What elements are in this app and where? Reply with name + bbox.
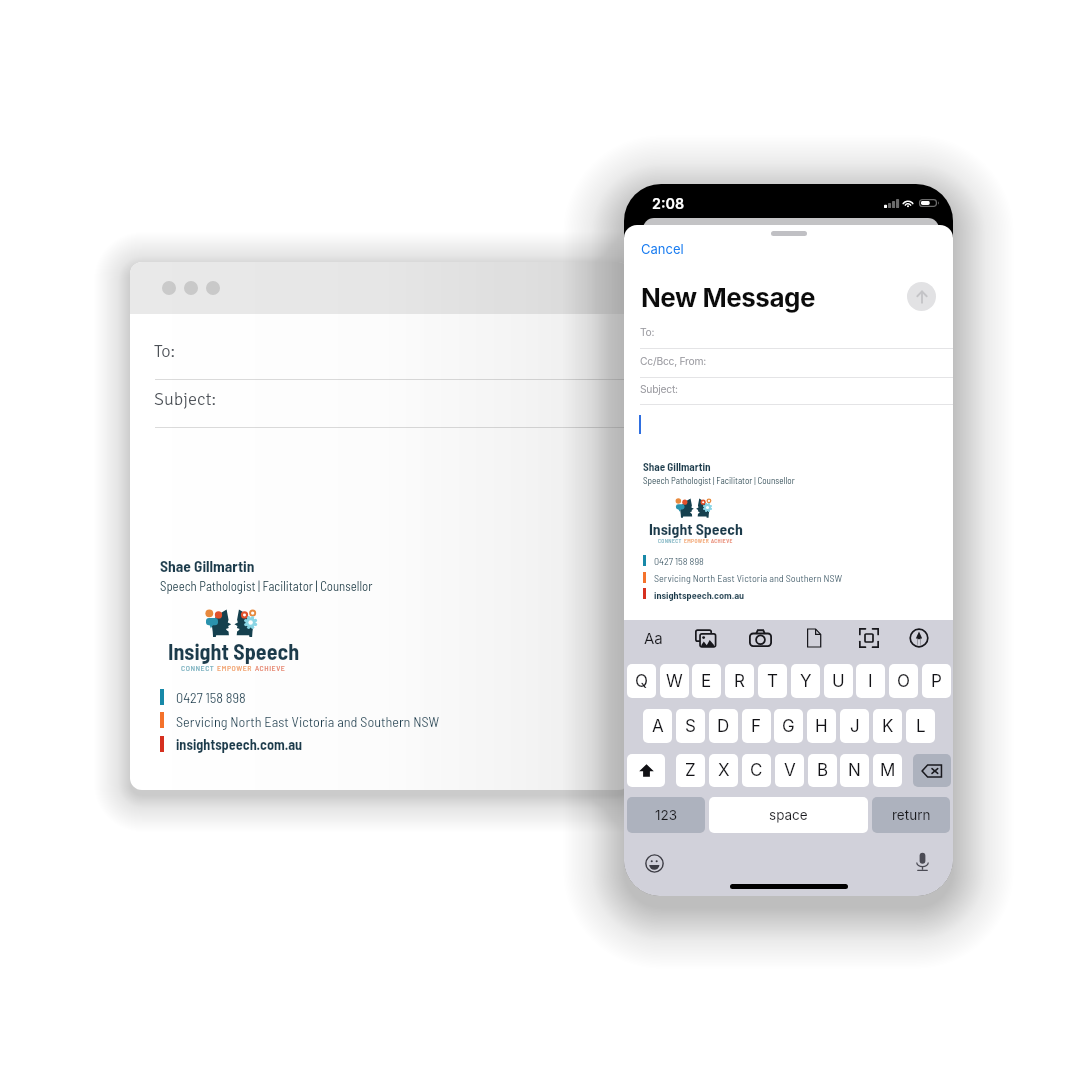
staticText: To: (640, 326, 655, 338)
button[interactable]: W (660, 664, 689, 698)
staticText: CONNECT (658, 537, 684, 544)
staticText: To: (154, 340, 176, 362)
staticText: Insight Speech (168, 638, 300, 664)
button[interactable]: Backspace (913, 754, 951, 787)
staticText: B (817, 760, 829, 781)
staticText: X (718, 760, 730, 781)
staticText: C (750, 760, 763, 781)
button[interactable]: Emoji keyboard (642, 851, 666, 875)
button[interactable]: Camera (748, 626, 772, 650)
button[interactable]: Aa (641, 626, 665, 650)
staticText: ACHIEVE (255, 663, 286, 672)
staticText: W (666, 671, 683, 692)
staticText: Speech Pathologist | Facilitator | Couns… (160, 578, 373, 593)
staticText: A (652, 716, 664, 737)
staticText: F (751, 716, 762, 737)
staticText: return (892, 807, 931, 823)
staticText: EMPOWER (217, 663, 255, 672)
staticText: H (815, 716, 828, 737)
button[interactable]: U (824, 664, 853, 698)
staticText: 0427 158 898 (176, 689, 246, 706)
button[interactable]: O (889, 664, 918, 698)
button[interactable]: L (906, 709, 935, 743)
staticText: 0427 158 898 (654, 555, 704, 567)
staticText: Aa (644, 629, 663, 647)
staticText: Y (800, 671, 812, 692)
button[interactable]: H (807, 709, 836, 743)
button[interactable]: Dictate (910, 850, 934, 874)
button[interactable]: T (758, 664, 787, 698)
staticText: N (848, 760, 861, 781)
button[interactable]: I (856, 664, 885, 698)
button[interactable]: Scan document (857, 626, 881, 650)
staticText: space (769, 807, 808, 823)
staticText: EMPOWER (684, 537, 711, 544)
staticText: CONNECT (181, 663, 217, 672)
staticText: O (897, 671, 910, 692)
button[interactable]: E (692, 664, 721, 698)
button[interactable]: A (643, 709, 672, 743)
button[interactable]: 123 (627, 797, 705, 833)
staticText: Subject: (154, 388, 216, 410)
button[interactable]: J (840, 709, 869, 743)
staticText: E (701, 671, 712, 692)
button[interactable]: space (709, 797, 868, 833)
staticText: Z (685, 760, 696, 781)
button[interactable]: return (872, 797, 950, 833)
staticText: 2:08 (652, 195, 685, 212)
button[interactable]: Photos (693, 626, 717, 650)
button[interactable]: V (775, 754, 804, 787)
staticText: 123 (655, 807, 678, 823)
button[interactable]: P (922, 664, 951, 698)
staticText: P (931, 671, 942, 692)
staticText: R (734, 671, 745, 692)
staticText: insightspeech.com.au (176, 736, 303, 753)
staticText: I (868, 671, 873, 692)
button[interactable]: C (742, 754, 771, 787)
button[interactable]: Z (676, 754, 705, 787)
staticText: ACHIEVE (711, 537, 733, 544)
staticText: V (784, 760, 796, 781)
staticText: J (850, 716, 860, 737)
button[interactable]: Attach document (802, 626, 826, 650)
staticText: D (717, 716, 730, 737)
button[interactable]: S (676, 709, 705, 743)
staticText: Cancel (641, 241, 684, 257)
staticText: Subject: (640, 383, 678, 395)
staticText: Insight Speech (649, 519, 743, 538)
button[interactable]: F (742, 709, 771, 743)
staticText: S (685, 716, 696, 737)
button[interactable]: G (774, 709, 803, 743)
button[interactable]: Y (791, 664, 820, 698)
staticText: Shae Gillmartin (643, 460, 711, 473)
button[interactable]: Cc/Bcc, From: (624, 348, 953, 377)
staticText: Cc/Bcc, From: (640, 355, 707, 367)
button[interactable]: X (709, 754, 738, 787)
staticText: K (882, 716, 894, 737)
staticText: M (880, 760, 896, 781)
button[interactable]: Cancel (633, 236, 692, 262)
button[interactable]: B (808, 754, 837, 787)
staticText: Speech Pathologist | Facilitator | Couns… (643, 475, 795, 486)
staticText: Q (635, 671, 648, 692)
staticText: L (916, 716, 926, 737)
staticText: insightspeech.com.au (654, 589, 745, 601)
button[interactable]: Shift (627, 754, 665, 787)
button[interactable]: Subject: (624, 376, 953, 404)
button[interactable]: N (840, 754, 869, 787)
button[interactable]: To: (624, 319, 953, 348)
button[interactable]: K (873, 709, 902, 743)
staticText: U (832, 671, 845, 692)
staticText: Servicing North East Victoria and Southe… (654, 572, 843, 584)
button[interactable]: M (873, 754, 902, 787)
button[interactable]: Markup (907, 626, 931, 650)
staticText: Shae Gillmartin (160, 556, 255, 575)
button[interactable]: D (709, 709, 738, 743)
staticText: New Message (641, 282, 816, 313)
staticText: G (782, 716, 795, 737)
button[interactable]: Send (907, 282, 936, 311)
button[interactable]: R (725, 664, 754, 698)
button[interactable]: Q (627, 664, 656, 698)
staticText: T (767, 671, 778, 692)
staticText: Servicing North East Victoria and Southe… (176, 713, 440, 730)
